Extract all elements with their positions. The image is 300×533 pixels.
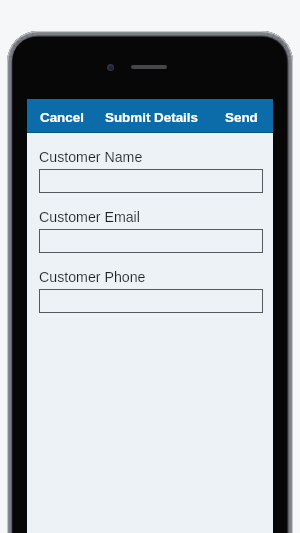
staticText: Send [225, 110, 258, 125]
button[interactable]: Customer Name [39, 169, 263, 193]
other: Front camera [107, 64, 114, 71]
staticText: Customer Phone [39, 269, 146, 285]
button[interactable]: Send [212, 103, 273, 130]
staticText: Cancel [40, 110, 84, 125]
staticText: Submit Details [105, 110, 199, 125]
button[interactable]: Cancel [27, 103, 97, 130]
button[interactable]: Customer Email [39, 229, 263, 253]
staticText: Customer Email [39, 209, 140, 225]
staticText: Customer Name [39, 149, 143, 165]
button[interactable]: Customer Phone [39, 289, 263, 313]
